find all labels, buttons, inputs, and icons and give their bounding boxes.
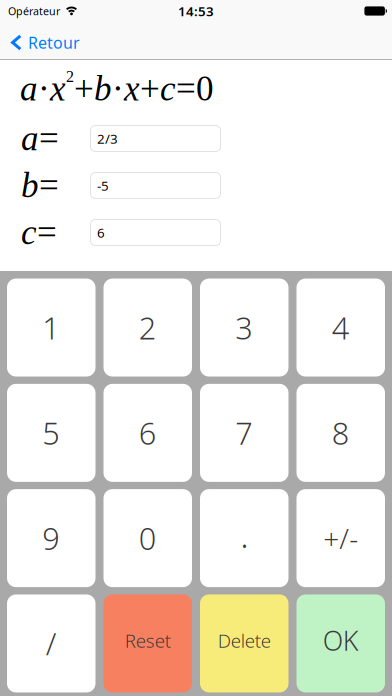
staticText: 5 bbox=[42, 412, 60, 453]
button[interactable]: 6 bbox=[103, 384, 192, 482]
staticText: Opérateur bbox=[8, 4, 60, 18]
staticText: 0 bbox=[139, 518, 157, 558]
staticText: / bbox=[46, 623, 57, 664]
button[interactable]: a value bbox=[90, 125, 221, 152]
button[interactable]: . bbox=[200, 489, 288, 587]
button[interactable]: 2 bbox=[103, 279, 192, 377]
button[interactable]: / bbox=[7, 594, 95, 692]
button[interactable]: Reset bbox=[103, 594, 192, 692]
staticText: Delete bbox=[218, 628, 271, 653]
staticText: . bbox=[240, 512, 248, 558]
staticText: OK bbox=[323, 623, 359, 658]
button[interactable]: 0 bbox=[103, 489, 192, 587]
staticText: 8 bbox=[332, 412, 350, 453]
button[interactable]: b value bbox=[90, 172, 221, 199]
button[interactable]: 3 bbox=[200, 279, 288, 377]
staticText: c= bbox=[21, 214, 57, 251]
button[interactable]: +/- bbox=[296, 489, 385, 587]
staticText: 6 bbox=[97, 224, 105, 241]
staticText: a= bbox=[21, 120, 59, 157]
staticText: 6 bbox=[139, 412, 157, 453]
staticText: 3 bbox=[235, 307, 253, 348]
staticText: 14:53 bbox=[178, 2, 214, 20]
staticText: 7 bbox=[235, 412, 253, 453]
staticText: 1 bbox=[42, 307, 60, 348]
button[interactable]: 7 bbox=[200, 384, 288, 482]
staticText: 2/3 bbox=[97, 130, 118, 147]
button[interactable]: 1 bbox=[7, 279, 95, 377]
staticText: 4 bbox=[332, 307, 350, 348]
staticText: -5 bbox=[97, 177, 109, 194]
staticText: +/- bbox=[323, 520, 358, 557]
staticText: Retour bbox=[28, 32, 80, 53]
staticText: Reset bbox=[125, 628, 171, 653]
staticText: 2 bbox=[139, 307, 157, 348]
staticText: a·x2+b·x+c=0 bbox=[20, 68, 214, 107]
button[interactable]: 8 bbox=[296, 384, 385, 482]
button[interactable]: Retour bbox=[0, 29, 80, 53]
staticText: b= bbox=[21, 167, 59, 204]
button[interactable]: 5 bbox=[7, 384, 95, 482]
button[interactable]: Delete bbox=[200, 594, 288, 692]
button[interactable]: OK bbox=[296, 594, 385, 692]
staticText: 9 bbox=[42, 518, 60, 558]
button[interactable]: c value bbox=[90, 219, 221, 246]
button[interactable]: 4 bbox=[296, 279, 385, 377]
button[interactable]: 9 bbox=[7, 489, 95, 587]
